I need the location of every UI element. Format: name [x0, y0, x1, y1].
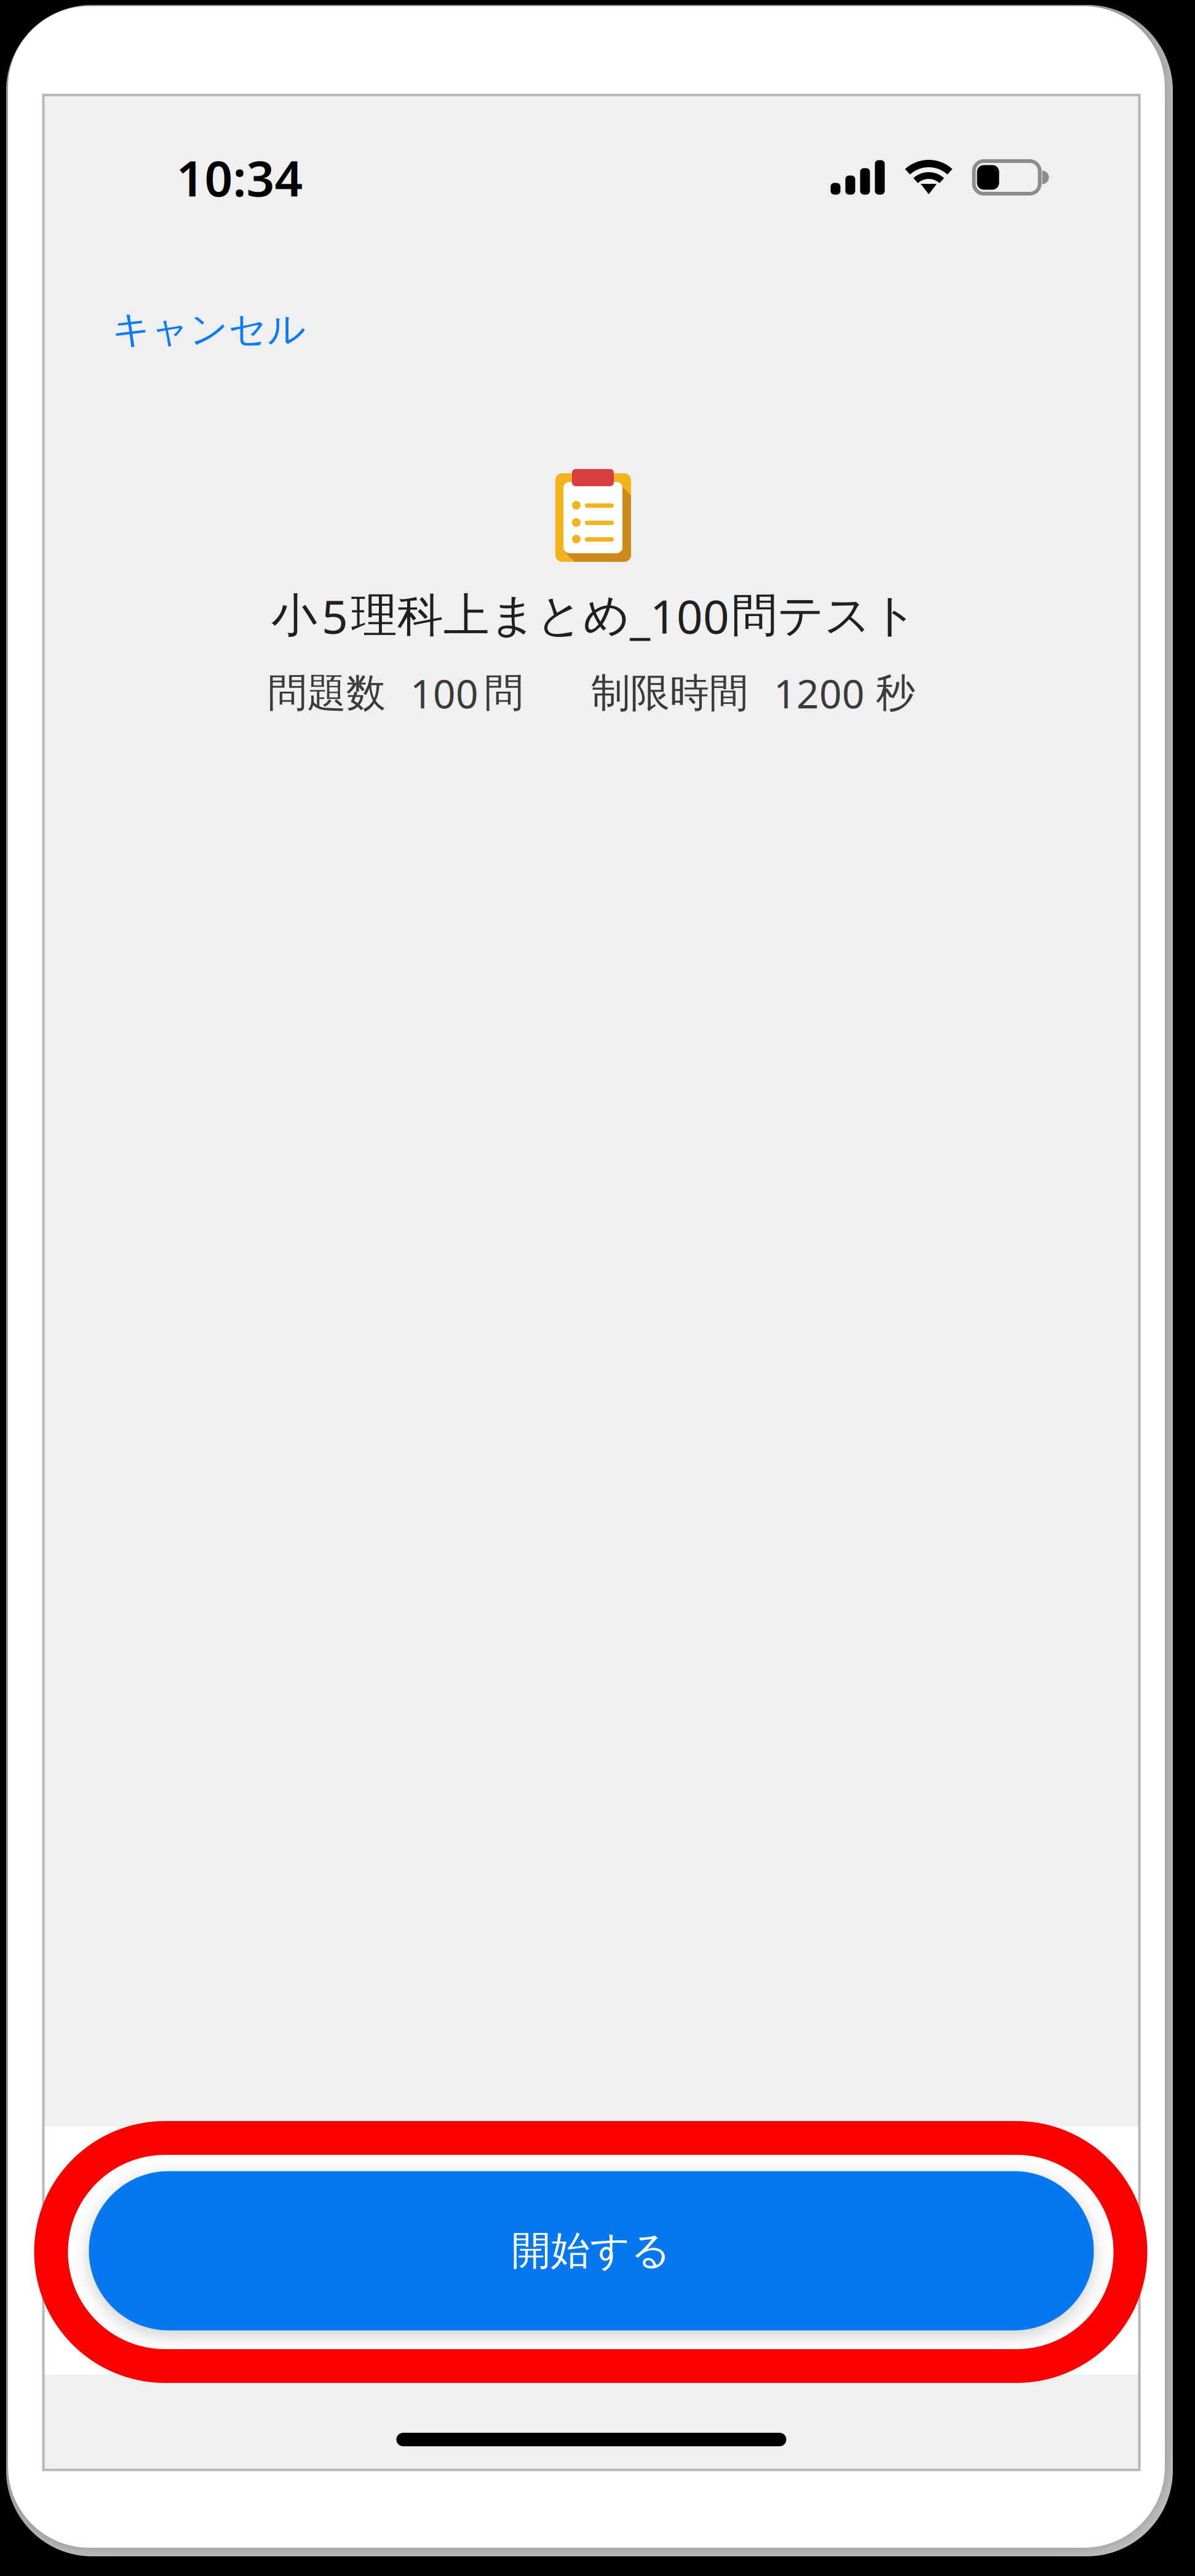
staticText: 小: [271, 588, 317, 644]
staticText: 秒: [876, 669, 915, 717]
staticText: 問題数: [268, 669, 386, 717]
staticText: キャンセル: [112, 306, 306, 353]
staticText: 理科上まとめ: [351, 588, 630, 644]
button[interactable]: 開始する: [89, 2171, 1094, 2330]
button[interactable]: キャンセル: [43, 290, 375, 369]
staticText: _100: [630, 585, 729, 646]
staticText: 問: [484, 669, 523, 717]
staticText: 10:34: [176, 145, 303, 210]
staticText: 開始する: [511, 2227, 671, 2275]
staticText: 問テスト: [731, 588, 918, 644]
staticText: 100: [410, 667, 478, 719]
staticText: 5: [322, 585, 348, 646]
staticText: 1200: [774, 667, 865, 719]
staticText: 制限時間: [591, 669, 748, 717]
